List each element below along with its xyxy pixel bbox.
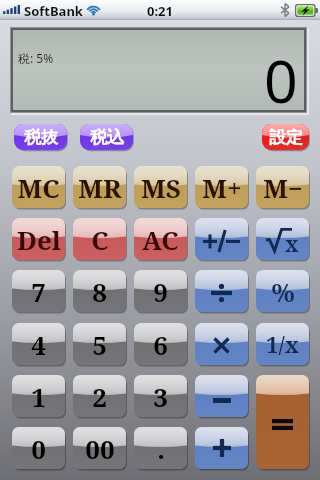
button[interactable]: Plus minus — [195, 218, 248, 260]
staticText: AC — [142, 222, 179, 257]
staticText: 3 — [153, 379, 168, 414]
button[interactable]: 2 — [73, 375, 126, 417]
staticText: x — [285, 230, 299, 259]
staticText: 7 — [31, 274, 46, 309]
button[interactable]: 0 — [12, 427, 65, 469]
button[interactable]: MC — [12, 166, 65, 208]
staticText: MR — [78, 170, 122, 205]
other: Battery charging — [295, 4, 318, 17]
button[interactable]: 税抜 — [14, 124, 67, 150]
button[interactable]: 税込 — [80, 124, 133, 150]
button[interactable]: 5 — [73, 323, 126, 365]
staticText: 0 — [31, 431, 46, 466]
button[interactable]: Equals — [256, 375, 309, 469]
button[interactable]: 8 — [73, 270, 126, 312]
button[interactable]: 4 — [12, 323, 65, 365]
staticText: 6 — [153, 327, 168, 362]
staticText: 設定 — [269, 127, 303, 148]
staticText: % — [271, 274, 295, 309]
button[interactable]: Divide — [195, 270, 248, 312]
staticText: 税込 — [90, 127, 124, 148]
button[interactable]: MS — [134, 166, 187, 208]
button[interactable]: 1/x — [256, 323, 309, 365]
staticText: 4 — [31, 327, 46, 362]
button[interactable]: 9 — [134, 270, 187, 312]
button[interactable]: Multiply — [195, 323, 248, 365]
button[interactable]: 00 — [73, 427, 126, 469]
staticText: MC — [17, 170, 60, 205]
staticText: 5 — [92, 327, 107, 362]
button[interactable]: Plus — [195, 427, 248, 469]
staticText: 1/x — [266, 329, 299, 359]
staticText: M+ — [202, 170, 242, 205]
staticText: 2 — [92, 379, 107, 414]
staticText: . — [157, 431, 165, 466]
staticText: SoftBank — [24, 2, 83, 20]
staticText: 税: 5% — [18, 50, 54, 66]
button[interactable]: Square root — [256, 218, 309, 260]
staticText: 8 — [92, 274, 107, 309]
button[interactable]: 6 — [134, 323, 187, 365]
button[interactable]: 3 — [134, 375, 187, 417]
staticText: 0:21 — [147, 2, 173, 20]
staticText: MS — [141, 170, 181, 205]
staticText: 0 — [264, 40, 298, 120]
button[interactable]: AC — [134, 218, 187, 260]
button[interactable]: % — [256, 270, 309, 312]
staticText: 税抜 — [24, 127, 58, 148]
button[interactable]: . — [134, 427, 187, 469]
staticText: C — [91, 222, 109, 257]
staticText: 00 — [85, 431, 115, 466]
button[interactable]: 設定 — [262, 124, 309, 150]
staticText: M− — [263, 170, 303, 205]
staticText: 9 — [153, 274, 168, 309]
button[interactable]: M− — [256, 166, 309, 208]
button[interactable]: Del — [12, 218, 65, 260]
button[interactable]: 1 — [12, 375, 65, 417]
staticText: Del — [17, 222, 61, 257]
button[interactable]: 7 — [12, 270, 65, 312]
button[interactable]: M+ — [195, 166, 248, 208]
button[interactable]: C — [73, 218, 126, 260]
button[interactable]: MR — [73, 166, 126, 208]
button[interactable]: Minus — [195, 375, 248, 417]
staticText: 1 — [31, 379, 46, 414]
